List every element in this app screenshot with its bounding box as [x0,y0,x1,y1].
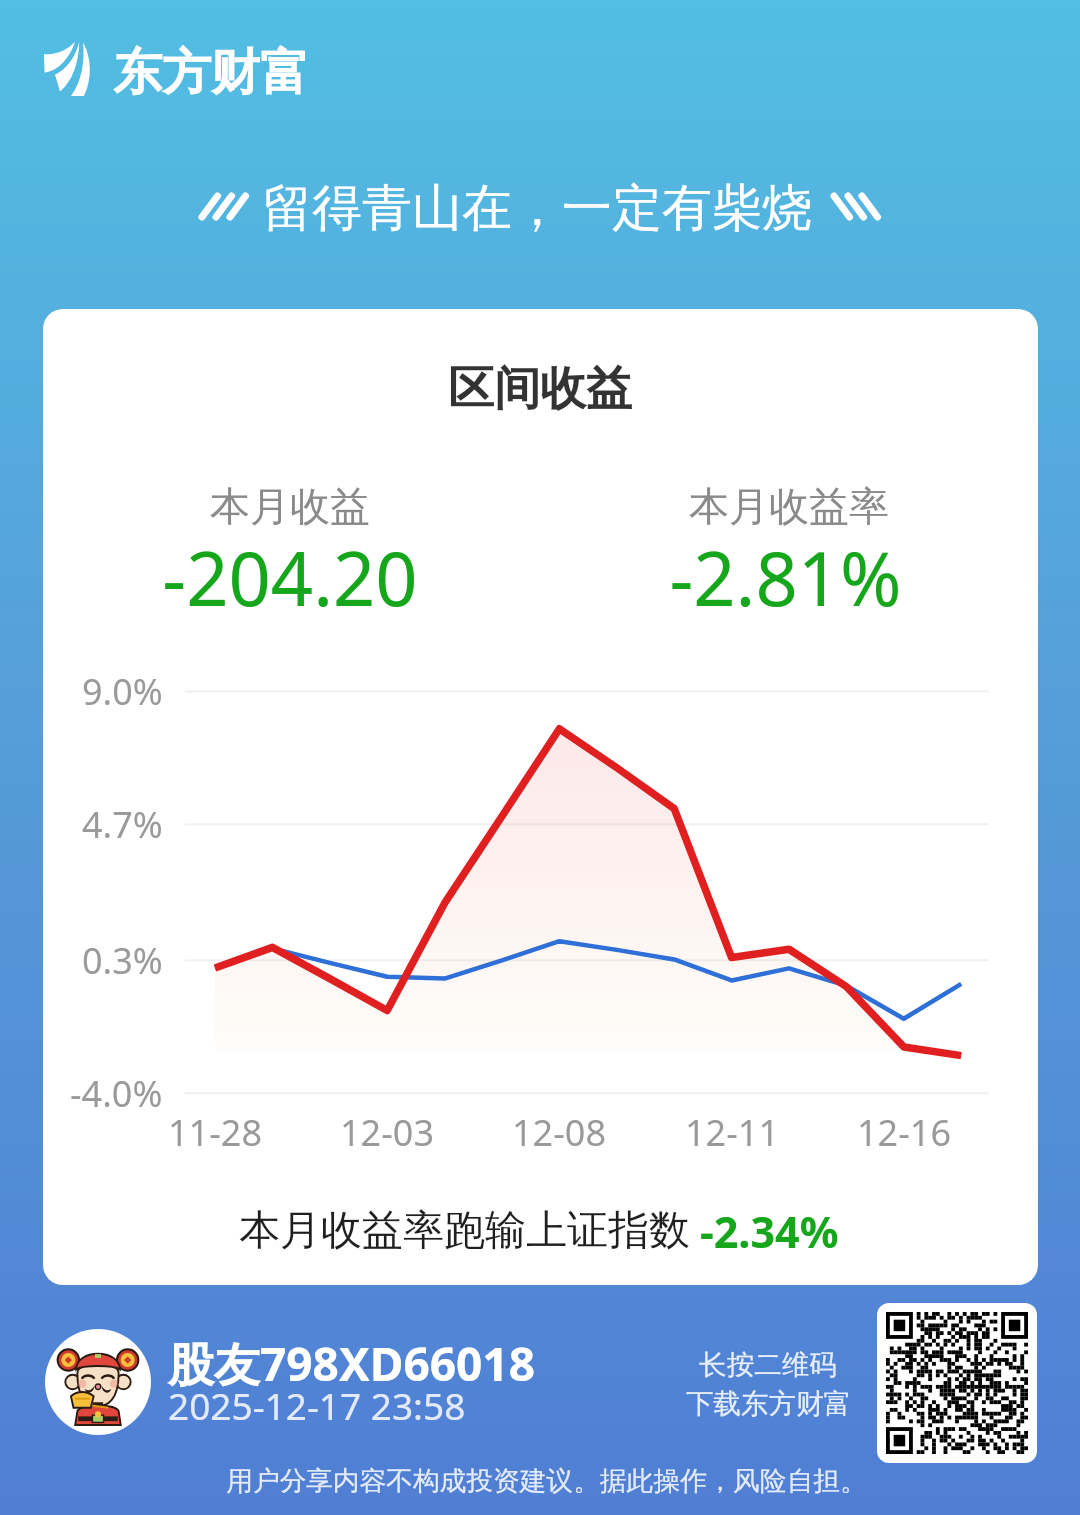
button[interactable]: QR code to download app [877,1303,1037,1463]
staticText: 本月收益率 [689,481,889,531]
staticText: 12-16 [857,1108,951,1157]
button[interactable]: User avatar [45,1329,151,1435]
staticText: 4.7% [82,800,163,849]
staticText: -4.0% [70,1069,163,1118]
button[interactable]: 本月收益率跑输上证指数 [239,1201,839,1261]
button[interactable]: 股友798XD66018 [168,1322,568,1438]
staticText: 11-28 [168,1108,262,1157]
staticText: 0.3% [82,936,163,985]
staticText: 东方财富 [113,42,309,104]
staticText: 2025-12-17 23:58 [168,1380,466,1430]
staticText: 下载东方财富 [686,1387,851,1422]
staticText: -204.20 [162,527,418,628]
staticText: 本月收益率跑输上证指数 [239,1205,690,1257]
button[interactable]: East Money home [42,41,309,105]
staticText: 本月收益 [210,481,370,531]
staticText: 9.0% [82,667,163,716]
staticText: 留得青山在，一定有柴烧 [262,177,812,240]
staticText: -2.34% [700,1202,839,1261]
staticText: -2.81% [669,527,902,628]
staticText: 长按二维码 [699,1348,837,1383]
staticText: 12-08 [512,1108,606,1157]
staticText: 用户分享内容不构成投资建议。据此操作，风险自担。 [226,1464,867,1498]
staticText: 12-11 [685,1108,779,1157]
staticText: 股友798XD66018 [168,1332,535,1395]
staticText: 区间收益 [448,360,632,418]
staticText: 12-03 [340,1108,434,1157]
